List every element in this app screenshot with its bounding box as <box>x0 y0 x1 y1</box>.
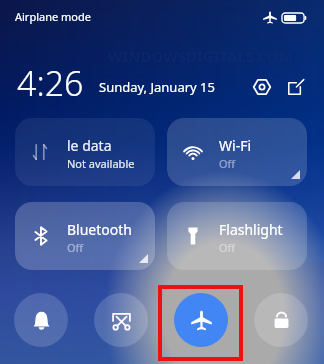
button[interactable]: Flashlight <box>167 202 307 270</box>
staticText: Off <box>67 240 84 255</box>
button[interactable]: Airplane mode <box>174 293 228 347</box>
button[interactable]: Edit <box>283 74 309 100</box>
staticText: WINDOWSDIGITALS.COM <box>108 46 293 66</box>
staticText: Flashlight <box>219 220 283 239</box>
staticText: Airplane mode <box>15 9 91 24</box>
button[interactable]: Settings <box>249 74 275 100</box>
staticText: Bluetooth <box>67 220 132 239</box>
button[interactable]: Lock <box>254 293 308 347</box>
button[interactable]: Screenshot <box>94 293 148 347</box>
button[interactable]: Bluetooth <box>15 202 155 270</box>
staticText: Not available <box>67 156 135 171</box>
staticText: Wi-Fi <box>219 136 252 155</box>
button[interactable]: Wi-Fi <box>167 118 307 186</box>
staticText: le data <box>67 136 112 155</box>
staticText: Off <box>219 156 236 171</box>
staticText: 4:26 <box>17 60 84 106</box>
button[interactable]: Silent <box>14 293 68 347</box>
button[interactable]: le data <box>15 118 155 186</box>
staticText: Sunday, January 15 <box>99 78 215 96</box>
staticText: Off <box>219 240 236 255</box>
